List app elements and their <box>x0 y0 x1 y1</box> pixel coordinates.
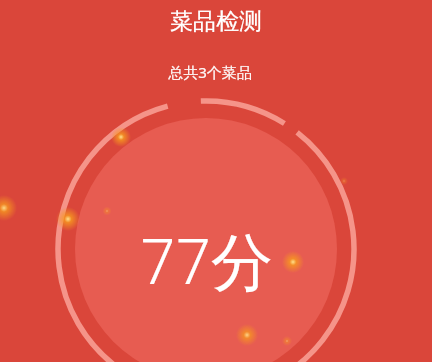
other: Dish detection score gauge <box>0 0 432 362</box>
staticText: 总共3个菜品 <box>168 62 252 82</box>
staticText: 菜品检测 <box>170 7 262 36</box>
button[interactable]: 77分 <box>140 218 273 303</box>
staticText: 77分 <box>140 218 273 303</box>
